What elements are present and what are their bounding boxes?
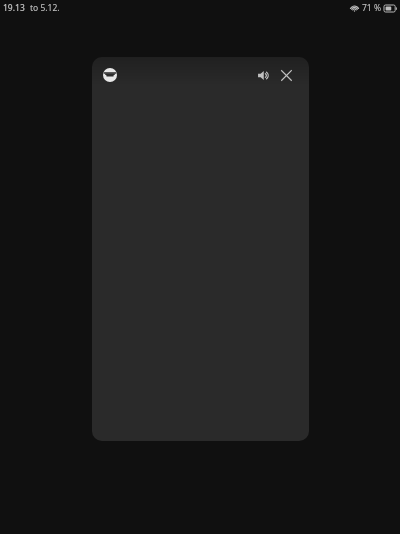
staticText: to 5.12.	[30, 2, 60, 14]
button[interactable]: Volume	[252, 64, 274, 86]
staticText: 71 %	[362, 2, 381, 14]
button[interactable]: Close	[275, 64, 297, 86]
button[interactable]: Spotify	[102, 67, 118, 83]
staticText: 19.13	[3, 2, 25, 14]
